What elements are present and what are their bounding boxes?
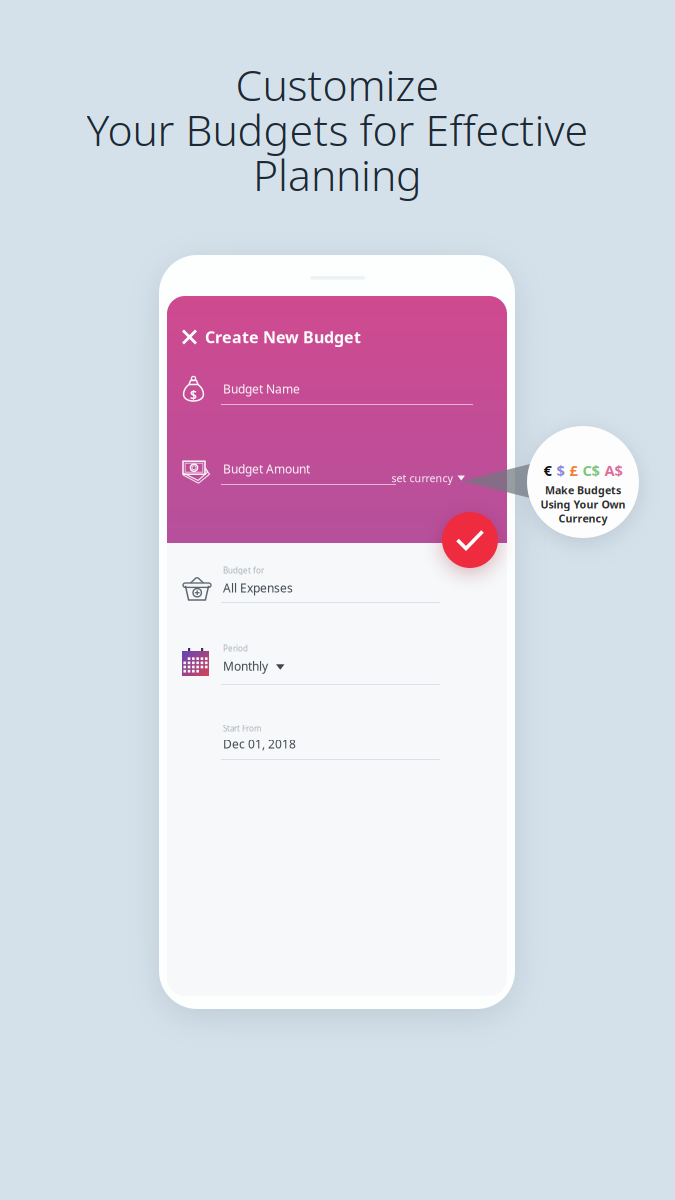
staticText: Budget for [223,565,264,576]
staticText: $ [556,460,564,480]
staticText: set currency [391,471,452,485]
staticText: Budget Name [223,381,300,397]
button[interactable]: set currency [375,471,465,485]
staticText: Budget Amount [223,461,310,477]
button[interactable]: Create New Budget [183,326,443,348]
staticText: Monthly [223,658,268,674]
staticText: Make Budgets [545,483,621,497]
staticText: All Expenses [223,580,293,596]
staticText: Dec 01, 2018 [223,736,296,752]
staticText: £ [569,460,577,480]
staticText: Currency [558,511,607,525]
staticText: A$ [604,460,622,480]
staticText: Start From [223,723,261,734]
staticText: Create New Budget [205,326,361,348]
staticText: $ [190,387,197,403]
button[interactable]: Save budget [442,512,498,568]
staticText: Using Your Own [540,497,625,511]
staticText: Period [223,643,248,654]
staticText: Customize [235,56,439,113]
staticText: C$ [582,460,599,480]
staticText: Your Budgets for Effective [86,101,588,158]
button[interactable]: Monthly [223,658,313,674]
staticText: € [543,460,551,480]
staticText: Planning [253,146,422,203]
